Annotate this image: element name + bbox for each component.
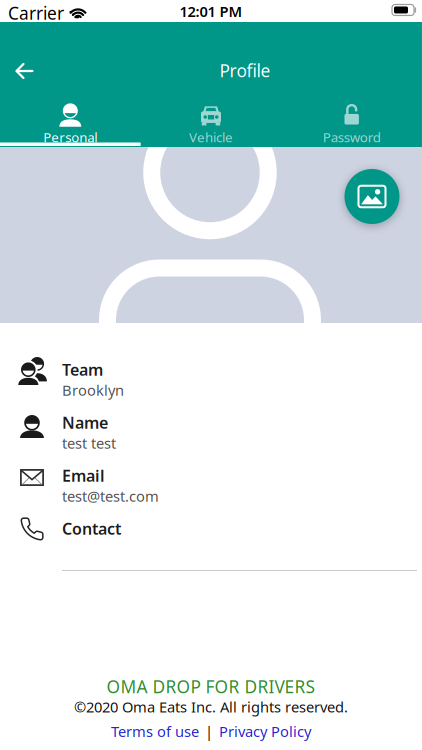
button[interactable]: Personal bbox=[0, 100, 141, 148]
staticText: test@test.com bbox=[62, 486, 159, 506]
staticText: Vehicle bbox=[189, 128, 233, 146]
staticText: Carrier bbox=[8, 1, 64, 24]
staticText: Email bbox=[62, 465, 105, 486]
staticText: Profile bbox=[219, 59, 270, 82]
button[interactable]: Password bbox=[281, 100, 422, 148]
staticText: OMA DROP FOR DRIVERS bbox=[106, 675, 315, 698]
staticText: Privacy Policy bbox=[219, 721, 311, 741]
button[interactable]: Terms of use bbox=[111, 721, 199, 741]
staticText: ©2020 Oma Eats Inc. All rights reserved. bbox=[74, 697, 348, 716]
staticText: test test bbox=[62, 433, 116, 453]
staticText: Password bbox=[323, 128, 381, 146]
staticText: Contact bbox=[62, 518, 121, 539]
staticText: Team bbox=[62, 359, 103, 380]
staticText: | bbox=[205, 721, 213, 741]
button[interactable]: Privacy Policy bbox=[219, 721, 311, 741]
staticText: Name bbox=[62, 412, 108, 433]
staticText: Personal bbox=[43, 128, 97, 146]
staticText: Terms of use bbox=[111, 721, 199, 741]
button[interactable]: Change photo bbox=[344, 169, 399, 224]
staticText: 12:01 PM bbox=[179, 1, 242, 21]
button[interactable]: Back bbox=[5, 52, 44, 90]
button[interactable]: Vehicle bbox=[141, 100, 281, 148]
staticText: Brooklyn bbox=[62, 380, 124, 400]
